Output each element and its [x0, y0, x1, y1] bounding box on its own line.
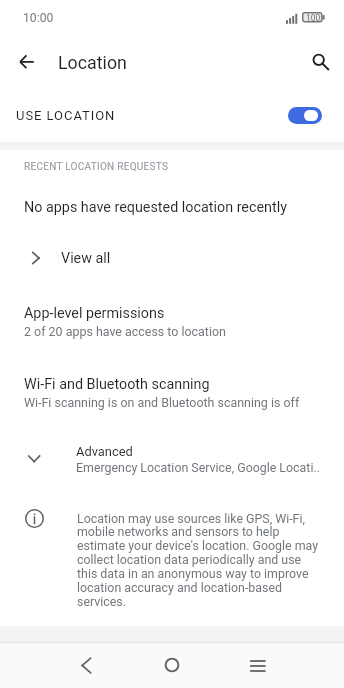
button[interactable]: Home — [148, 641, 196, 688]
staticText: RECENT LOCATION REQUESTS — [24, 161, 169, 173]
staticText: 2 of 20 apps have access to location — [24, 324, 226, 339]
button[interactable]: Recent apps — [234, 641, 282, 688]
staticText: Location — [58, 52, 127, 73]
button[interactable]: App-level permissions — [0, 302, 344, 342]
staticText: Location may use sources like GPS, Wi-Fi… — [77, 511, 321, 609]
staticText: View all — [61, 250, 111, 267]
button[interactable]: Back — [7, 42, 47, 82]
button[interactable]: View all — [0, 240, 344, 276]
staticText: Advanced — [76, 444, 133, 459]
staticText: No apps have requested location recently — [24, 199, 287, 216]
button[interactable]: Advanced — [0, 434, 344, 480]
button[interactable]: Back — [62, 641, 110, 688]
staticText: Wi-Fi and Bluetooth scanning — [24, 376, 210, 393]
button[interactable]: Search — [299, 42, 339, 82]
staticText: Wi-Fi scanning is on and Bluetooth scann… — [24, 395, 300, 410]
staticText: Emergency Location Service, Google Locat… — [76, 460, 320, 475]
button[interactable]: Wi-Fi and Bluetooth scanning — [0, 373, 344, 413]
staticText: 100 — [306, 13, 321, 23]
staticText: 10:00 — [23, 11, 54, 25]
button[interactable]: USE LOCATION — [0, 97, 344, 134]
staticText: App-level permissions — [24, 305, 165, 322]
staticText: USE LOCATION — [16, 108, 288, 123]
